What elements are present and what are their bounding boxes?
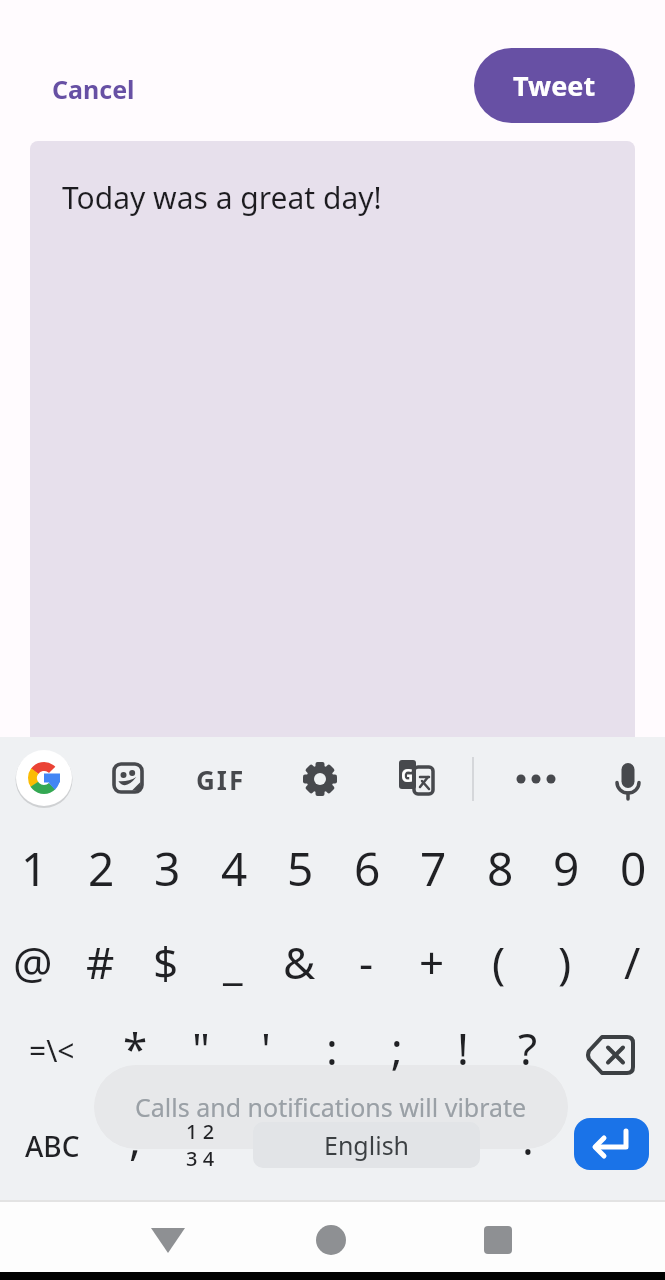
button[interactable]: [150, 1226, 186, 1254]
button[interactable]: [610, 757, 646, 803]
staticText: 1: [21, 837, 48, 900]
staticText: _: [223, 932, 243, 992]
button[interactable]: #: [67, 916, 133, 1008]
button[interactable]: 4: [201, 822, 267, 914]
button[interactable]: [506, 770, 566, 788]
staticText: 3: [154, 837, 181, 900]
button[interactable]: G: [399, 760, 435, 796]
button[interactable]: ': [233, 1002, 299, 1094]
staticText: Cancel: [52, 72, 135, 106]
button[interactable]: ": [168, 1002, 234, 1094]
button[interactable]: ): [532, 916, 598, 1008]
staticText: English: [324, 1128, 410, 1162]
staticText: &: [283, 932, 316, 992]
button[interactable]: [303, 762, 337, 796]
button[interactable]: 8: [467, 822, 533, 914]
button[interactable]: .: [495, 1092, 561, 1184]
staticText: ;: [391, 1018, 403, 1078]
button[interactable]: [112, 762, 144, 794]
staticText: ,: [129, 1108, 141, 1168]
button[interactable]: GIF: [196, 762, 246, 797]
staticText: =\<: [29, 1030, 75, 1071]
staticText: 3 4: [186, 1145, 215, 1170]
button[interactable]: -: [333, 916, 399, 1008]
staticText: G: [401, 764, 414, 787]
staticText: 1 2: [186, 1118, 215, 1145]
button[interactable]: !: [430, 1002, 496, 1094]
button[interactable]: [316, 1225, 346, 1255]
staticText: 6: [354, 837, 381, 900]
staticText: Today was a great day!: [62, 177, 382, 218]
button[interactable]: &: [266, 916, 332, 1008]
button[interactable]: Tweet: [474, 48, 635, 123]
button[interactable]: (: [466, 916, 532, 1008]
button[interactable]: English: [253, 1122, 480, 1168]
button[interactable]: _: [200, 916, 266, 1008]
staticText: +: [419, 932, 445, 992]
staticText: :: [326, 1018, 338, 1078]
button[interactable]: Cancel: [36, 62, 151, 116]
button[interactable]: =\<: [19, 1004, 85, 1096]
staticText: 2: [88, 837, 115, 900]
staticText: 5: [287, 837, 314, 900]
button[interactable]: 0: [600, 822, 665, 914]
staticText: -: [359, 932, 374, 992]
staticText: @: [13, 932, 53, 992]
staticText: ABC: [25, 1127, 80, 1165]
button[interactable]: ;: [364, 1002, 430, 1094]
button[interactable]: 2: [68, 822, 134, 914]
button[interactable]: [484, 1226, 512, 1254]
staticText: *: [123, 1018, 148, 1078]
staticText: Calls and notifications will vibrate: [135, 1090, 527, 1124]
staticText: (: [492, 932, 506, 992]
staticText: 9: [553, 837, 580, 900]
staticText: 0: [620, 837, 647, 900]
button[interactable]: 1: [1, 822, 67, 914]
button[interactable]: /: [599, 916, 665, 1008]
button[interactable]: [586, 1035, 635, 1075]
button[interactable]: *: [102, 1002, 168, 1094]
staticText: !: [457, 1018, 469, 1078]
staticText: ": [192, 1018, 210, 1078]
staticText: Tweet: [513, 67, 596, 104]
button[interactable]: ?: [495, 1002, 561, 1094]
button[interactable]: ABC: [19, 1100, 85, 1192]
staticText: #: [86, 932, 115, 992]
staticText: 7: [420, 837, 447, 900]
button[interactable]: 3: [134, 822, 200, 914]
button[interactable]: 6: [334, 822, 400, 914]
button[interactable]: ,: [102, 1092, 168, 1184]
staticText: $: [153, 932, 179, 992]
staticText: 8: [487, 837, 514, 900]
button[interactable]: $: [133, 916, 199, 1008]
staticText: ): [558, 932, 572, 992]
staticText: 4: [221, 837, 248, 900]
button[interactable]: 5: [267, 822, 333, 914]
button[interactable]: Today was a great day!: [30, 141, 635, 737]
button[interactable]: +: [399, 916, 465, 1008]
button[interactable]: 1 2: [178, 1118, 222, 1170]
button[interactable]: :: [299, 1002, 365, 1094]
staticText: ': [261, 1018, 271, 1078]
staticText: GIF: [196, 762, 246, 797]
button[interactable]: 9: [533, 822, 599, 914]
button[interactable]: 7: [400, 822, 466, 914]
staticText: /: [624, 932, 641, 992]
button[interactable]: @: [0, 916, 66, 1008]
staticText: .: [522, 1108, 534, 1168]
button[interactable]: [574, 1118, 649, 1170]
staticText: ?: [518, 1018, 538, 1078]
button[interactable]: [16, 750, 72, 806]
